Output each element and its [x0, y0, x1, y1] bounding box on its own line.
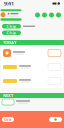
- staticText: Chip: [6, 24, 16, 29]
- button[interactable]: Chip: [2, 24, 21, 28]
- staticText: 9:41: [4, 0, 14, 7]
- button[interactable]: Chip: [2, 30, 21, 35]
- staticText: TODAY: [3, 40, 17, 45]
- button[interactable]: Edit: [2, 117, 14, 122]
- button[interactable]: [1, 46, 63, 60]
- button[interactable]: Status: [49, 117, 62, 122]
- staticText: Chip: [6, 30, 16, 35]
- staticText: Edit: [4, 117, 12, 122]
- button[interactable]: [1, 74, 63, 88]
- staticText: NEXT: [3, 93, 13, 98]
- button[interactable]: [1, 60, 63, 74]
